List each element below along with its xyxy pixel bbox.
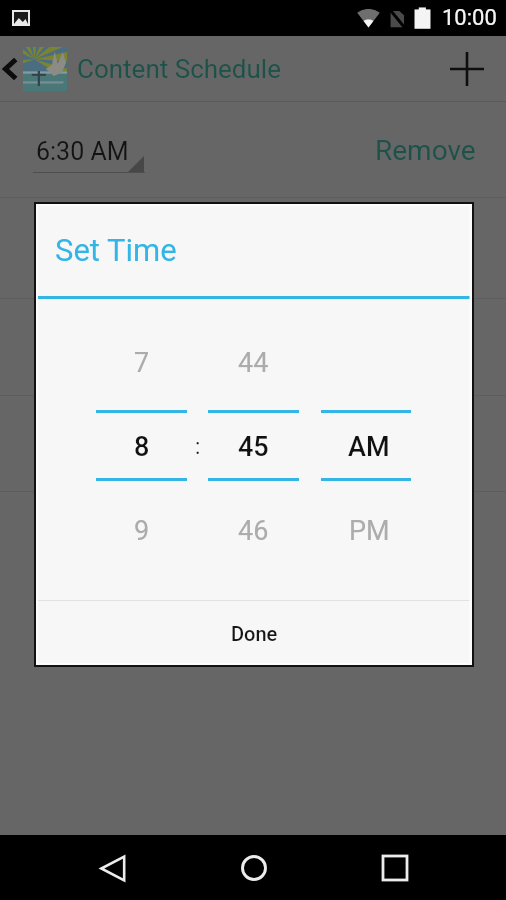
button[interactable]: AM (321, 299, 411, 600)
staticText: : (195, 434, 201, 460)
staticText: 44 (238, 347, 269, 379)
staticText: Set Time (55, 232, 177, 268)
button[interactable]: 7 (96, 299, 187, 600)
button[interactable]: Done (36, 601, 472, 665)
button[interactable]: Remove (375, 134, 476, 167)
button[interactable]: Recent apps (364, 837, 426, 899)
staticText: 6:30 AM (36, 137, 129, 166)
staticText: 10:00 (442, 5, 497, 31)
staticText: PM (349, 515, 390, 547)
button[interactable]: Back (82, 837, 144, 899)
button[interactable]: Home (223, 837, 285, 899)
staticText: 46 (238, 515, 269, 547)
staticText: 45 (238, 431, 269, 463)
staticText: Remove (375, 134, 476, 167)
staticText: Content Schedule (77, 54, 281, 84)
button[interactable]: Back (0, 47, 281, 91)
button[interactable]: 44 (208, 299, 299, 600)
staticText: AM (348, 431, 390, 463)
button[interactable]: Add (428, 36, 506, 102)
staticText: 8 (134, 431, 150, 463)
staticText: Done (231, 622, 278, 645)
staticText: 7 (134, 347, 150, 379)
button[interactable]: 6:30 AM (33, 130, 145, 175)
staticText: 9 (134, 515, 150, 547)
other: Back (4, 58, 16, 80)
